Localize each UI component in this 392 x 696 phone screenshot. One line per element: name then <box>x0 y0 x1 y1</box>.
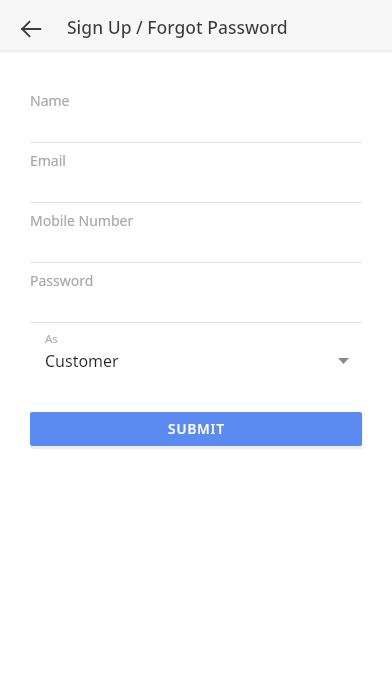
button[interactable]: Password <box>30 271 362 323</box>
staticText: Sign Up / Forgot Password <box>67 15 288 39</box>
staticText: Email <box>30 151 66 170</box>
button[interactable]: Name <box>30 91 362 143</box>
button[interactable]: Email <box>30 151 362 203</box>
button[interactable]: Mobile Number <box>30 211 362 263</box>
staticText: Mobile Number <box>30 211 134 230</box>
button[interactable]: SUBMIT <box>30 412 362 446</box>
button[interactable]: Back <box>13 11 49 47</box>
button[interactable]: As <box>30 329 362 377</box>
staticText: Name <box>30 91 70 110</box>
staticText: SUBMIT <box>168 420 225 438</box>
staticText: Password <box>30 271 94 290</box>
staticText: As <box>45 331 58 347</box>
staticText: Customer <box>45 350 119 372</box>
